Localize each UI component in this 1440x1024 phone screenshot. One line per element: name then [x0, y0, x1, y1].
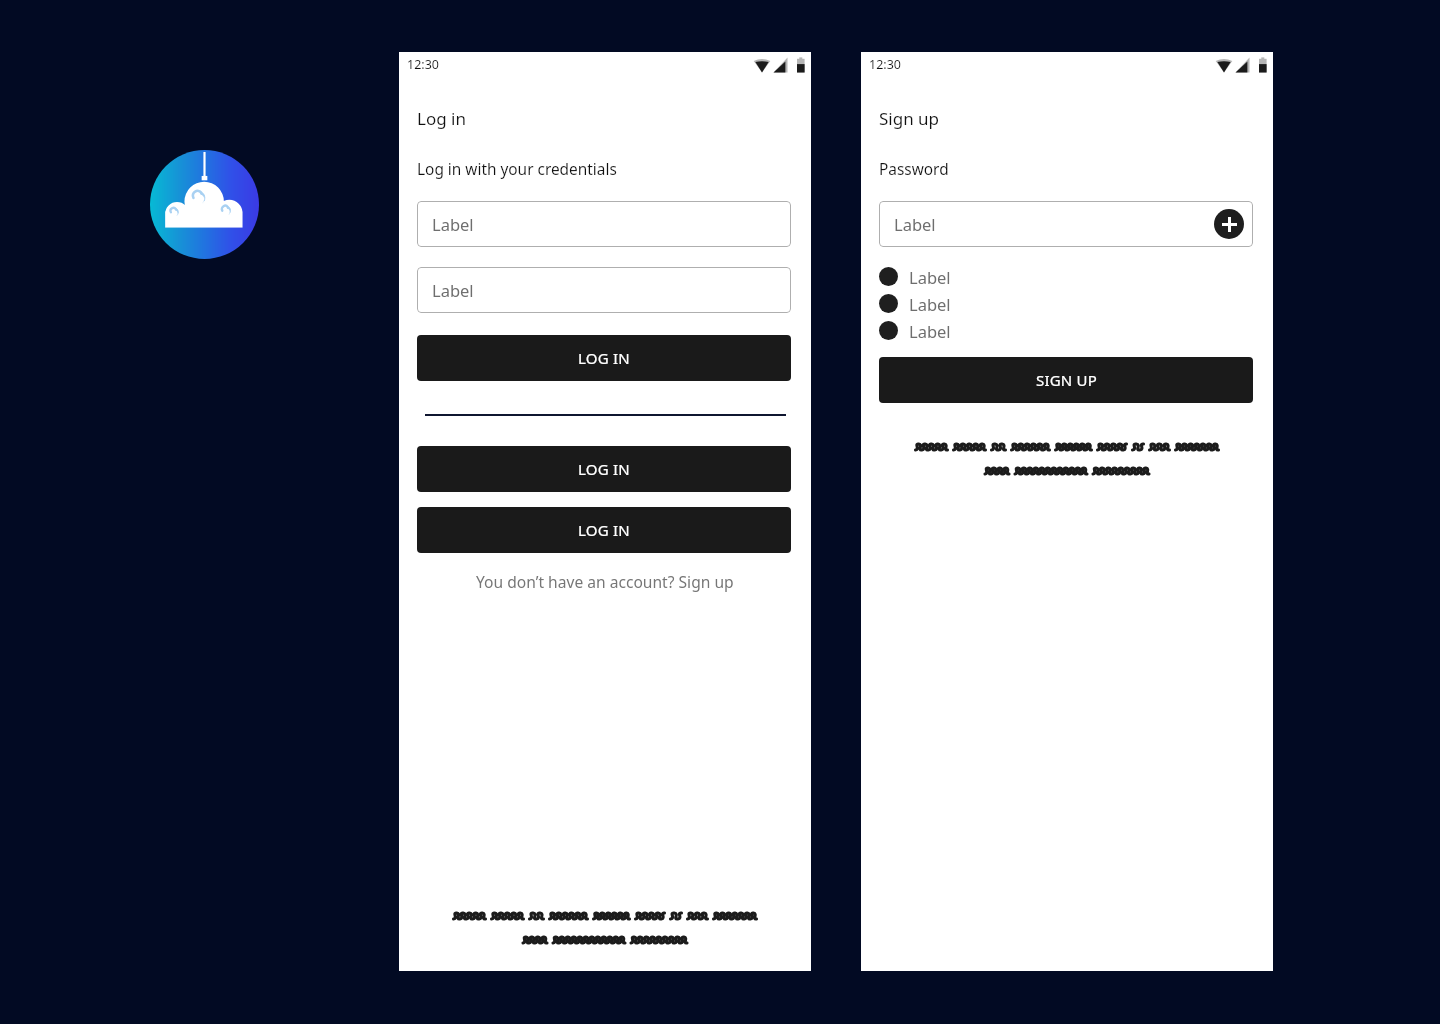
button[interactable]: Label: [879, 201, 1253, 247]
staticText: Label: [909, 293, 951, 315]
staticText: LOG IN: [578, 459, 630, 479]
staticText: 12:30: [407, 56, 439, 73]
staticText: Label: [909, 320, 951, 342]
staticText: You don’t have an account? Sign up: [476, 571, 734, 592]
button[interactable]: Label: [879, 263, 1253, 290]
staticText: Log in: [417, 107, 466, 130]
staticText: Label: [894, 213, 936, 235]
button[interactable]: Label: [879, 290, 1253, 317]
button[interactable]: Label: [417, 267, 791, 313]
staticText: LOG IN: [578, 520, 630, 540]
button[interactable]: Label: [879, 317, 1253, 344]
staticText: Label: [432, 213, 474, 235]
staticText: SIGN UP: [1036, 370, 1097, 390]
staticText: LOG IN: [578, 348, 630, 368]
button[interactable]: LOG IN: [417, 335, 791, 381]
button[interactable]: SIGN UP: [879, 357, 1253, 403]
staticText: Sign up: [879, 107, 940, 130]
button[interactable]: You don’t have an account? Sign up: [464, 565, 746, 598]
staticText: Label: [909, 266, 951, 288]
button[interactable]: LOG IN: [417, 507, 791, 553]
staticText: 12:30: [869, 56, 901, 73]
staticText: Log in with your credentials: [417, 159, 617, 180]
button[interactable]: Add: [1214, 209, 1244, 239]
button[interactable]: LOG IN: [417, 446, 791, 492]
button[interactable]: Label: [417, 201, 791, 247]
staticText: Password: [879, 159, 949, 180]
staticText: Label: [432, 279, 474, 301]
